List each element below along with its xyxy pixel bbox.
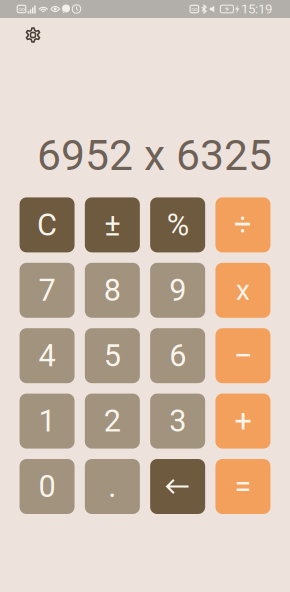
button[interactable]: 5 <box>85 328 140 383</box>
staticText: 1 <box>38 403 55 439</box>
staticText: 15:19 <box>241 1 272 17</box>
button[interactable]: x <box>215 263 270 318</box>
staticText: 7 <box>38 272 55 308</box>
staticText: % <box>167 207 189 243</box>
button[interactable]: 9 <box>150 263 205 318</box>
button[interactable]: + <box>215 394 270 449</box>
staticText: ± <box>104 207 120 243</box>
staticText: 9 <box>169 272 186 308</box>
staticText: 4 <box>38 338 55 374</box>
staticText: 8 <box>104 272 121 308</box>
button[interactable]: = <box>215 459 270 514</box>
button[interactable]: 1 <box>19 394 74 449</box>
staticText: 5 <box>104 338 121 374</box>
button[interactable]: . <box>85 459 140 514</box>
button[interactable]: Settings <box>16 18 50 52</box>
button[interactable]: 3 <box>150 394 205 449</box>
button[interactable]: 6 <box>150 328 205 383</box>
button[interactable]: 8 <box>85 263 140 318</box>
staticText: 3 <box>169 403 186 439</box>
staticText: 2 <box>104 403 121 439</box>
staticText: oo <box>18 5 24 12</box>
staticText: ÷ <box>234 207 252 243</box>
staticText: = <box>234 468 251 504</box>
button[interactable]: % <box>150 197 205 252</box>
staticText: + <box>234 403 251 439</box>
button[interactable]: 2 <box>85 394 140 449</box>
button[interactable]: ÷ <box>215 197 270 252</box>
button[interactable]: C <box>19 197 74 252</box>
staticText: 6952 x 6325 <box>37 130 272 180</box>
button[interactable]: 4 <box>19 328 74 383</box>
button[interactable]: − <box>215 328 270 383</box>
staticText: − <box>233 336 252 375</box>
button[interactable]: Backspace <box>150 459 205 514</box>
button[interactable]: 0 <box>19 459 74 514</box>
staticText: oo <box>191 5 197 12</box>
button[interactable]: ± <box>85 197 140 252</box>
button[interactable]: 7 <box>19 263 74 318</box>
staticText: 0 <box>38 468 55 504</box>
staticText: x <box>236 274 250 307</box>
staticText: C <box>37 207 57 243</box>
staticText: . <box>108 468 116 504</box>
staticText: 6 <box>169 338 186 374</box>
